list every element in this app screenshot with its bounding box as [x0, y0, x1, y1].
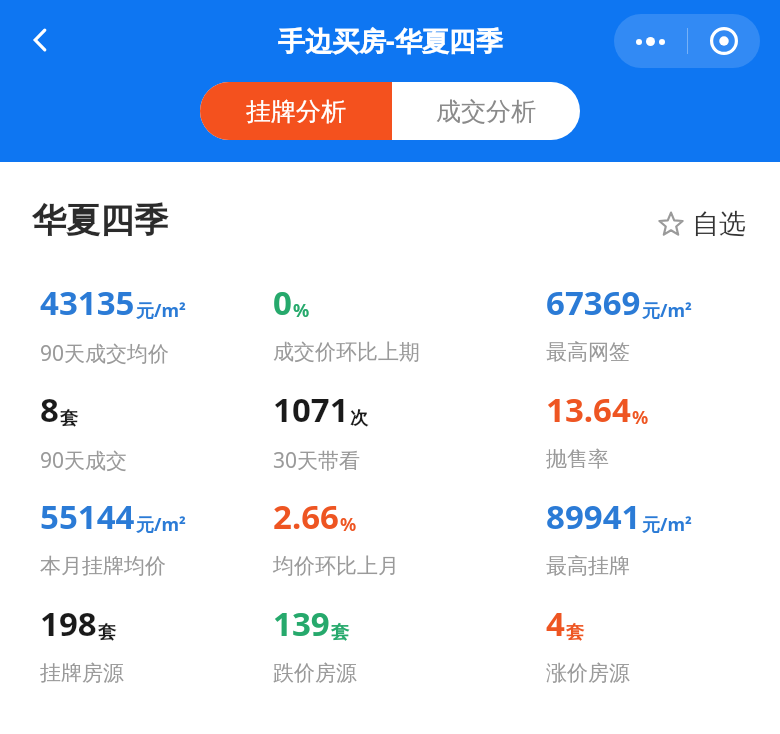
staticText: 手边买房-华夏四季 — [278, 22, 503, 59]
staticText: 元/m² — [136, 298, 186, 323]
button[interactable]: 139 — [273, 595, 546, 702]
staticText: 涨价房源 — [546, 660, 630, 686]
staticText: % — [632, 405, 649, 430]
staticText: 华夏四季 — [32, 199, 168, 242]
staticText: 元/m² — [136, 512, 186, 537]
button[interactable]: 成交分析 — [392, 82, 580, 140]
staticText: 成交价环比上期 — [273, 339, 420, 365]
staticText: 90天成交均价 — [40, 339, 170, 368]
staticText: 0 — [273, 280, 292, 325]
staticText: % — [293, 298, 310, 323]
button[interactable]: 8 — [0, 381, 273, 488]
staticText: 元/m² — [642, 512, 692, 537]
button[interactable]: 1071 — [273, 381, 546, 488]
staticText: 最高挂牌 — [546, 553, 630, 579]
staticText: 43135 — [40, 280, 135, 325]
button[interactable]: Close — [688, 14, 760, 68]
staticText: 自选 — [692, 207, 746, 241]
button[interactable]: 89941 — [546, 488, 740, 595]
staticText: 198 — [40, 601, 97, 646]
staticText: 套 — [331, 621, 349, 644]
button[interactable]: 4 — [546, 595, 740, 702]
staticText: 挂牌分析 — [246, 96, 346, 127]
staticText: 跌价房源 — [273, 660, 357, 686]
staticText: 抛售率 — [546, 446, 609, 472]
staticText: 4 — [546, 601, 565, 646]
staticText: 次 — [350, 407, 368, 430]
button[interactable]: 挂牌分析 — [200, 82, 392, 140]
button[interactable]: 0 — [273, 274, 546, 381]
staticText: 30天带看 — [273, 446, 361, 475]
staticText: 最高网签 — [546, 339, 630, 365]
staticText: 套 — [60, 407, 78, 430]
button[interactable]: Back — [12, 12, 68, 68]
staticText: 89941 — [546, 494, 641, 539]
staticText: 元/m² — [642, 298, 692, 323]
button[interactable]: 67369 — [546, 274, 740, 381]
staticText: 139 — [273, 601, 330, 646]
staticText: 67369 — [546, 280, 641, 325]
staticText: 8 — [40, 387, 59, 432]
staticText: 挂牌房源 — [40, 660, 124, 686]
staticText: 本月挂牌均价 — [40, 553, 166, 579]
button[interactable]: 55144 — [0, 488, 273, 595]
button[interactable]: More options — [614, 14, 687, 68]
staticText: 套 — [566, 621, 584, 644]
staticText: % — [340, 512, 357, 537]
button[interactable]: 13.64 — [546, 381, 740, 488]
button[interactable]: 2.66 — [273, 488, 546, 595]
staticText: 均价环比上月 — [273, 553, 399, 579]
button[interactable]: 43135 — [0, 274, 273, 381]
staticText: 成交分析 — [436, 96, 536, 127]
staticText: 套 — [98, 621, 116, 644]
staticText: 90天成交 — [40, 446, 128, 475]
button[interactable]: 198 — [0, 595, 273, 702]
staticText: 13.64 — [546, 387, 631, 432]
staticText: 2.66 — [273, 494, 339, 539]
staticText: 1071 — [273, 387, 349, 432]
button[interactable]: 自选 — [652, 201, 752, 247]
staticText: 55144 — [40, 494, 135, 539]
